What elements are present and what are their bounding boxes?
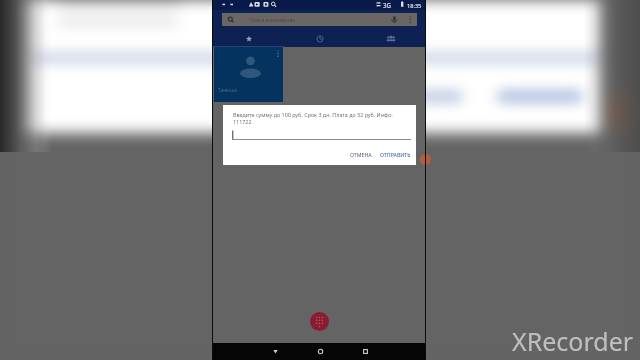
staticText: ОТМЕНА bbox=[350, 151, 372, 158]
button[interactable]: Recents bbox=[284, 29, 355, 47]
staticText: Танюша bbox=[218, 87, 237, 94]
button[interactable]: Back bbox=[261, 343, 289, 360]
button[interactable]: Favorites bbox=[213, 29, 284, 47]
staticText: XRecorder bbox=[512, 324, 634, 358]
button[interactable]: Танюша bbox=[214, 47, 284, 102]
button[interactable]: Screen recorder bbox=[420, 154, 431, 165]
staticText: Поиск в контактах bbox=[249, 16, 295, 23]
button[interactable]: Dial pad bbox=[310, 312, 329, 331]
staticText: 3G bbox=[383, 1, 392, 9]
button[interactable]: ОТМЕНА bbox=[348, 149, 374, 160]
staticText: ОТПРАВИТЬ bbox=[380, 151, 411, 158]
button[interactable]: Home bbox=[306, 343, 334, 360]
button[interactable]: Contacts bbox=[355, 29, 426, 47]
staticText: 18:35 bbox=[407, 2, 422, 10]
button[interactable]: Поиск в контактах bbox=[222, 13, 417, 26]
button[interactable]: ОТПРАВИТЬ bbox=[378, 149, 413, 160]
button[interactable]: Overview bbox=[351, 343, 379, 360]
staticText: Введите сумму до 100 руб. Срок 3 дн. Пла… bbox=[233, 111, 409, 125]
